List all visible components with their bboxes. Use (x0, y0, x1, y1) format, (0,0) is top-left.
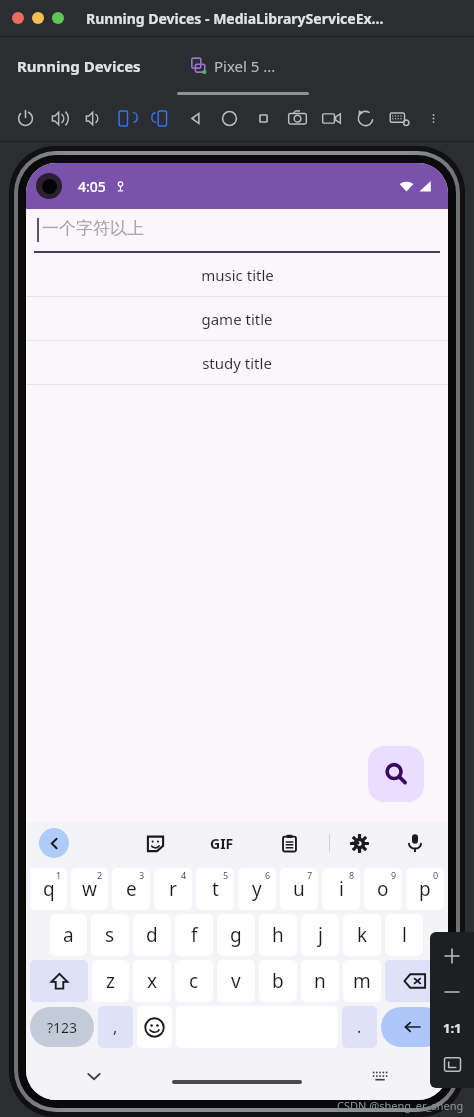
button[interactable]: d (133, 914, 171, 956)
staticText: m (353, 968, 371, 994)
button[interactable] (52, 12, 64, 24)
button[interactable]: Power (8, 101, 42, 135)
button[interactable]: t (196, 868, 234, 910)
button[interactable]: n (301, 960, 339, 1002)
button[interactable]: v (217, 960, 255, 1002)
button[interactable]: Screenshot (280, 101, 314, 135)
staticText: 2 (97, 869, 103, 881)
button[interactable]: q (30, 868, 67, 910)
button[interactable]: s (91, 914, 129, 956)
button[interactable]: x (133, 960, 171, 1002)
staticText: 5 (223, 869, 229, 881)
staticText: 4:05 (78, 177, 106, 196)
button[interactable]: Zoom out (434, 974, 470, 1010)
button[interactable]: Search (368, 746, 424, 802)
button[interactable]: ?123 (30, 1007, 94, 1047)
button[interactable]: . (342, 1006, 377, 1048)
staticText: CSDN @sheng_er_sheng (337, 1098, 464, 1113)
button[interactable]: Hardware input (382, 101, 416, 135)
button[interactable]: Record screen (314, 101, 348, 135)
staticText: 4 (181, 869, 187, 881)
staticText: 3 (139, 869, 145, 881)
staticText: a (63, 922, 74, 948)
staticText: 8 (349, 869, 355, 881)
button[interactable]: Rotate left (110, 101, 144, 135)
button[interactable]: Shift (30, 960, 88, 1002)
staticText: 一个字符以上 (42, 218, 144, 239)
button[interactable]: h (259, 914, 297, 956)
button[interactable]: z (92, 960, 129, 1002)
button[interactable]: , (98, 1006, 133, 1048)
button[interactable]: Emoji (137, 1006, 172, 1048)
button[interactable]: b (259, 960, 297, 1002)
button[interactable]: j (301, 914, 339, 956)
button[interactable]: Volume up (42, 101, 76, 135)
staticText: 1 (56, 869, 62, 881)
button[interactable]: More (416, 101, 450, 135)
staticText: s (105, 922, 115, 948)
button[interactable]: m (343, 960, 381, 1002)
button[interactable] (12, 12, 24, 24)
button[interactable]: Enter (381, 1007, 444, 1047)
staticText: i (339, 876, 344, 902)
staticText: 0 (433, 869, 439, 881)
button[interactable]: Rotate right (144, 101, 178, 135)
button[interactable]: study title (26, 341, 448, 384)
button[interactable]: f (175, 914, 213, 956)
button[interactable]: Zoom in (434, 938, 470, 974)
button[interactable]: r (154, 868, 192, 910)
button[interactable]: Back (178, 101, 212, 135)
button[interactable]: e (112, 868, 150, 910)
button[interactable]: 1:1 (434, 1010, 470, 1046)
staticText: w (82, 876, 97, 902)
button[interactable]: u (280, 868, 318, 910)
staticText: o (377, 876, 389, 902)
button[interactable]: Pixel 5 ... (190, 56, 276, 76)
button[interactable]: Stickers (140, 828, 170, 858)
button[interactable]: Overview (246, 101, 280, 135)
staticText: r (169, 876, 177, 902)
staticText: u (293, 876, 305, 902)
button[interactable]: a (50, 914, 87, 956)
button[interactable]: game title (26, 297, 448, 340)
button[interactable]: Back (39, 828, 69, 858)
button[interactable]: Volume down (76, 101, 110, 135)
button[interactable]: Reset (348, 101, 382, 135)
button[interactable]: c (175, 960, 213, 1002)
button[interactable]: l (385, 914, 423, 956)
button[interactable]: GIF (210, 834, 234, 853)
staticText: music title (201, 265, 274, 285)
button[interactable]: More options (343, 828, 373, 858)
button[interactable]: Voice input (400, 828, 430, 858)
button[interactable]: y (238, 868, 276, 910)
button[interactable]: Clipboard (274, 828, 304, 858)
staticText: t (212, 876, 219, 902)
staticText: 9 (391, 869, 397, 881)
button[interactable]: g (217, 914, 255, 956)
staticText: GIF (210, 834, 234, 853)
staticText: c (189, 968, 199, 994)
button[interactable]: w (71, 868, 108, 910)
button[interactable]: k (343, 914, 381, 956)
button[interactable]: Home (212, 101, 246, 135)
button[interactable]: Zoom to fit (434, 1046, 470, 1082)
staticText: n (314, 968, 326, 994)
button[interactable]: Hide keyboard (78, 1060, 110, 1092)
staticText: game title (201, 309, 273, 329)
staticText: b (272, 968, 284, 994)
staticText: e (126, 876, 137, 902)
button[interactable]: Switch input method (364, 1060, 396, 1092)
staticText: v (231, 968, 241, 994)
button[interactable] (32, 12, 44, 24)
button[interactable]: i (322, 868, 360, 910)
button[interactable]: music title (26, 253, 448, 296)
staticText: h (272, 922, 284, 948)
staticText: g (230, 922, 242, 948)
staticText: x (147, 968, 158, 994)
button[interactable]: Backspace (385, 960, 444, 1002)
button[interactable]: p (406, 868, 444, 910)
button[interactable]: Settings (344, 828, 374, 858)
button[interactable]: o (364, 868, 402, 910)
staticText: k (357, 922, 368, 948)
